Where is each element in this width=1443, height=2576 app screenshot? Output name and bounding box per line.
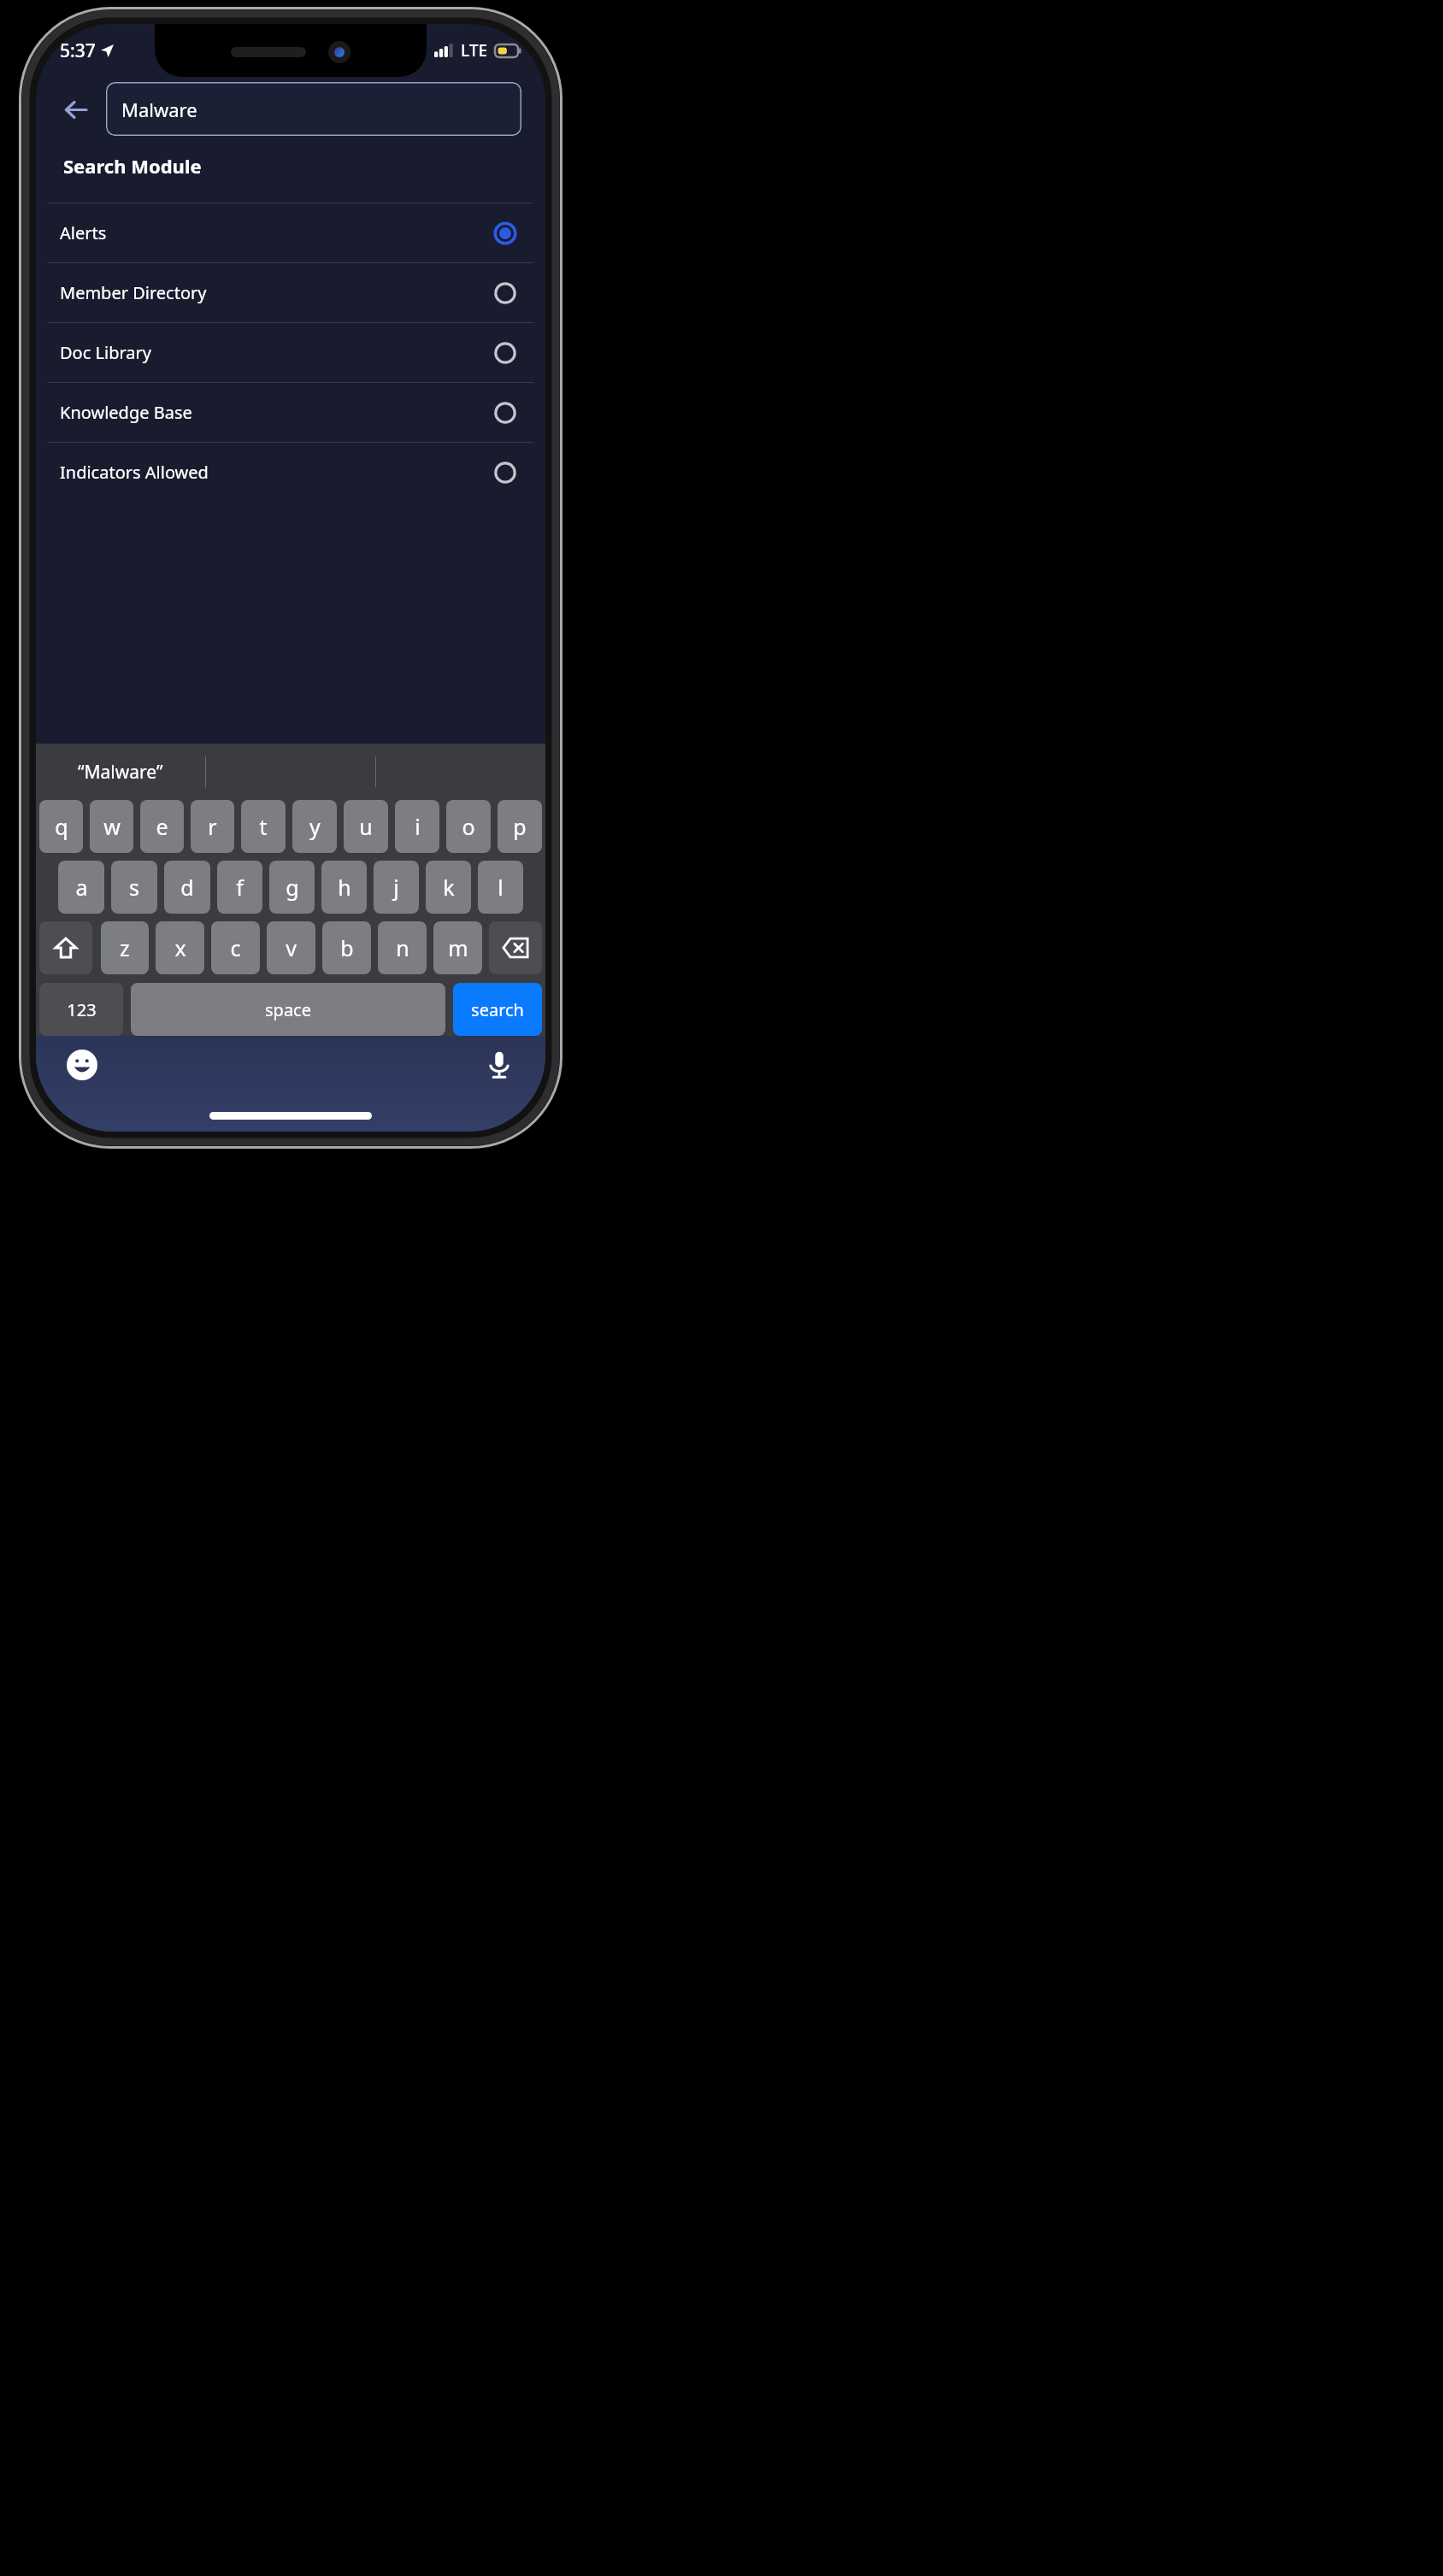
button[interactable]: z [101,921,149,974]
button[interactable]: Shift [39,921,92,974]
staticText: Knowledge Base [60,401,192,424]
staticText: Doc Library [60,341,151,364]
button[interactable]: n [378,921,427,974]
staticText: e [156,812,168,841]
button[interactable]: f [217,861,262,914]
button[interactable]: j [374,861,419,914]
button[interactable]: o [446,800,491,853]
button[interactable]: r [191,800,234,853]
staticText: Indicators Allowed [60,461,209,484]
staticText: n [396,933,409,962]
button[interactable]: e [140,800,184,853]
button[interactable]: Alerts [36,203,545,262]
button[interactable]: space [131,983,445,1036]
button[interactable]: y [292,800,337,853]
button[interactable]: Member Directory [36,263,545,322]
staticText: k [443,873,455,902]
button[interactable]: Doc Library [36,323,545,382]
staticText: “Malware” [78,760,163,785]
button[interactable]: k [426,861,471,914]
button[interactable]: t [241,800,286,853]
button[interactable]: c [211,921,260,974]
staticText: m [448,933,468,962]
button[interactable]: Indicators Allowed [36,443,545,502]
button[interactable]: l [478,861,523,914]
button[interactable]: d [164,861,210,914]
button[interactable]: “Malware” [36,744,205,800]
staticText: q [55,812,68,841]
button[interactable]: s [111,861,157,914]
staticText: space [265,998,311,1021]
staticText: LTE [461,39,488,62]
button[interactable]: m [433,921,482,974]
button[interactable]: x [156,921,204,974]
staticText: 5:37 [60,38,96,63]
staticText: o [462,812,475,841]
staticText: z [120,933,130,962]
staticText: r [208,812,217,841]
button[interactable]: Knowledge Base [36,383,545,442]
staticText: c [230,933,241,962]
button[interactable]: a [58,861,104,914]
button[interactable]: b [322,921,371,974]
staticText: a [75,873,88,902]
button[interactable]: Dictate [482,1048,516,1082]
staticText: h [338,873,351,902]
staticText: u [359,812,373,841]
button[interactable]: i [395,800,439,853]
button[interactable]: q [39,800,83,853]
button[interactable]: Backspace [489,921,542,974]
staticText: w [103,812,121,841]
staticText: p [513,812,527,841]
staticText: l [498,873,504,902]
staticText: v [286,933,297,962]
button[interactable]: Emoji [65,1048,99,1082]
staticText: t [259,812,268,841]
staticText: g [286,873,299,902]
staticText: s [129,873,139,902]
button[interactable]: Back [55,89,96,130]
staticText: Malware [121,97,197,122]
button[interactable]: search [453,983,542,1036]
button[interactable]: p [498,800,542,853]
button[interactable]: 123 [39,983,123,1036]
button[interactable]: h [321,861,367,914]
staticText: b [340,933,354,962]
staticText: Alerts [60,221,107,244]
staticText: Search Module [63,153,202,179]
button[interactable]: u [344,800,388,853]
staticText: y [309,812,321,841]
button[interactable]: v [267,921,315,974]
staticText: Member Directory [60,281,207,304]
button[interactable]: g [269,861,315,914]
staticText: 123 [67,998,97,1021]
button[interactable]: w [90,800,133,853]
staticText: i [415,812,421,841]
staticText: search [471,998,524,1021]
staticText: j [393,873,399,902]
staticText: f [236,873,244,902]
staticText: d [180,873,194,902]
staticText: x [174,933,186,962]
button[interactable]: Malware [106,82,521,136]
